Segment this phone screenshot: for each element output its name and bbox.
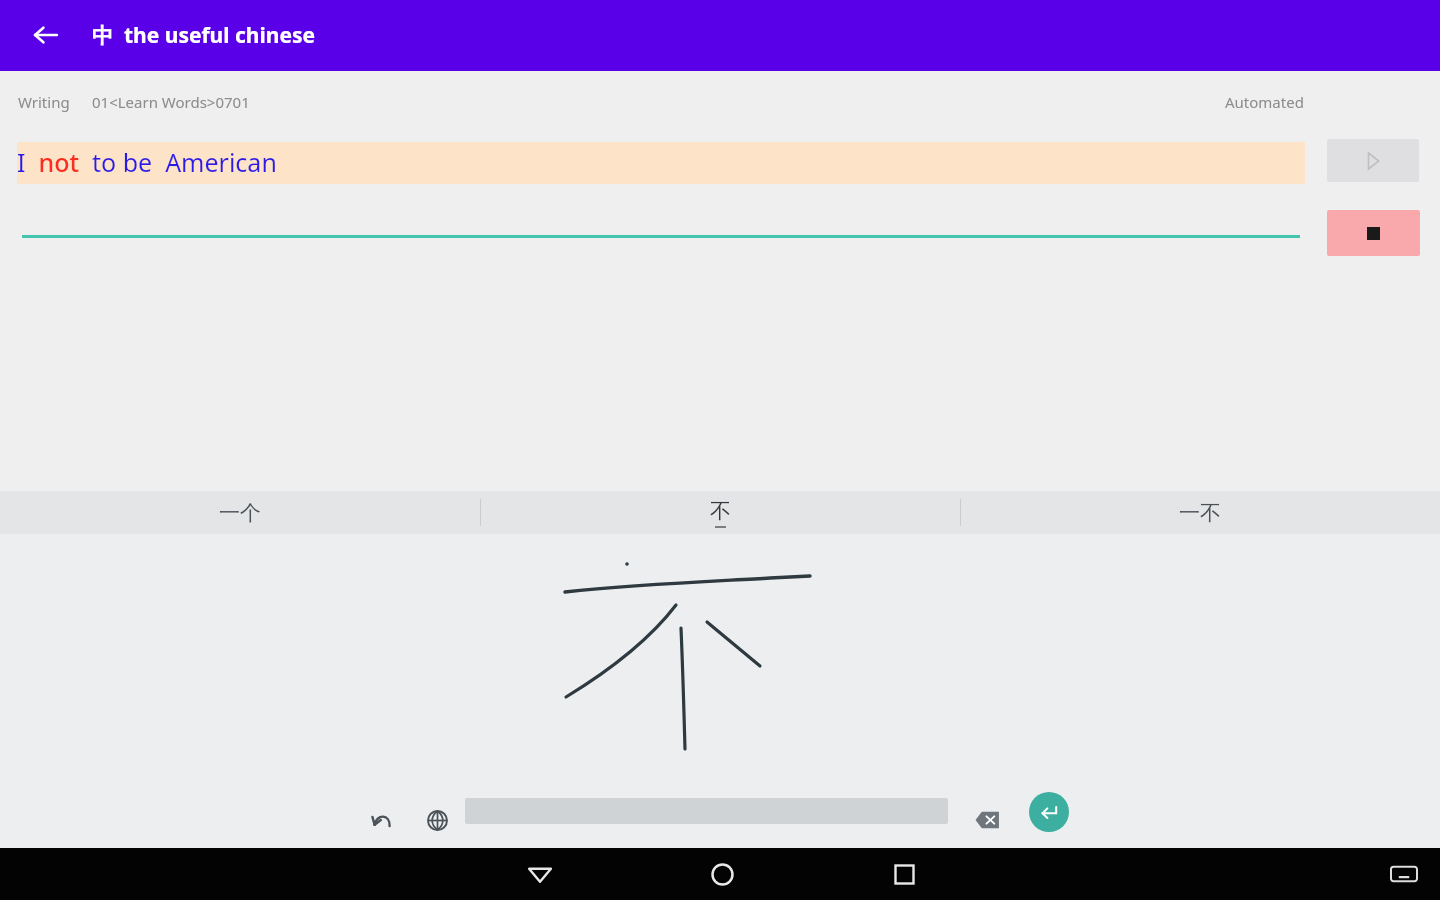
staticText: Automated <box>1225 92 1304 112</box>
button[interactable]: Undo <box>362 799 404 841</box>
staticText: I not to be American <box>17 145 277 179</box>
button[interactable]: 一个 <box>0 491 480 534</box>
button[interactable]: Stop <box>1327 210 1420 256</box>
button[interactable]: 不 <box>480 491 960 534</box>
button[interactable]: Keyboard <box>1382 852 1426 896</box>
staticText: Writing <box>18 92 70 112</box>
staticText: the useful chinese <box>124 21 316 50</box>
staticText: 一不 <box>1179 500 1221 526</box>
button[interactable]: Backspace <box>966 799 1008 841</box>
button[interactable]: Back <box>24 13 68 57</box>
button[interactable]: Change language <box>416 799 458 841</box>
staticText: 中 <box>92 23 113 49</box>
button[interactable]: Enter <box>1029 792 1069 832</box>
staticText: 一个 <box>219 500 261 526</box>
button[interactable]: Play <box>1327 139 1419 182</box>
button[interactable]: Home <box>694 848 750 900</box>
button[interactable]: Back <box>512 848 568 900</box>
staticText: 不 <box>710 498 731 524</box>
button[interactable]: Recent apps <box>876 848 932 900</box>
staticText: 01<Learn Words>0701 <box>92 92 250 112</box>
button[interactable]: 一不 <box>960 491 1440 534</box>
